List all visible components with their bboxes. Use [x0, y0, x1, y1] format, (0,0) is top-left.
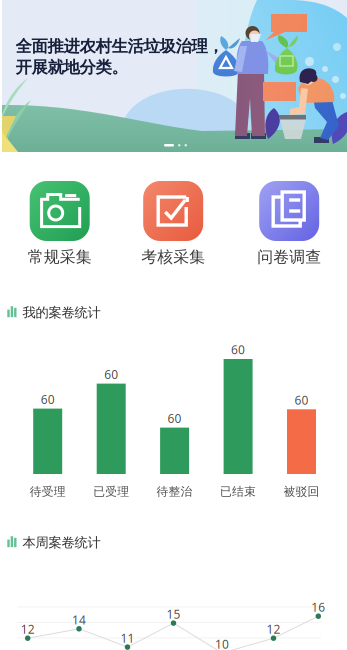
staticText: 11: [120, 630, 134, 646]
staticText: 全面推进农村生活垃圾治理，: [15, 36, 223, 56]
staticText: 15: [166, 606, 180, 622]
button[interactable]: 考核采集: [115, 181, 230, 267]
staticText: 问卷调查: [257, 247, 321, 267]
staticText: 已结束: [220, 484, 256, 499]
staticText: 60: [294, 392, 308, 408]
staticText: 已受理: [93, 484, 129, 499]
staticText: 被驳回: [283, 484, 319, 499]
staticText: 待受理: [30, 484, 66, 499]
staticText: 60: [168, 410, 182, 426]
staticText: 常规采集: [28, 247, 92, 267]
staticText: 60: [104, 366, 118, 382]
staticText: 16: [311, 599, 325, 615]
staticText: 12: [266, 621, 280, 637]
staticText: 60: [41, 391, 55, 407]
staticText: 10: [215, 636, 229, 650]
staticText: 开展就地分类。: [15, 57, 127, 77]
staticText: 60: [231, 341, 245, 358]
staticText: 待整治: [157, 484, 193, 499]
button[interactable]: 常规采集: [0, 181, 115, 267]
staticText: 本周案卷统计: [22, 534, 100, 551]
staticText: 我的案卷统计: [22, 304, 100, 321]
staticText: 考核采集: [141, 247, 205, 267]
button[interactable]: 问卷调查: [230, 181, 345, 267]
staticText: 12: [21, 621, 35, 637]
staticText: 14: [72, 612, 86, 628]
